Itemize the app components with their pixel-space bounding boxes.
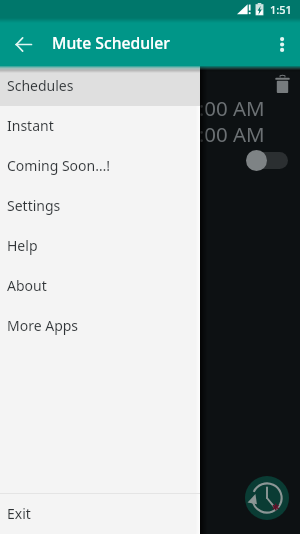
button[interactable]: Add schedule [245,476,289,520]
staticText: Exit [7,504,31,523]
staticText: Instant [7,116,54,135]
button[interactable]: Back [0,21,47,68]
button[interactable]: Delete [275,75,290,93]
staticText: More Apps [7,316,79,335]
staticText: Settings [7,196,61,215]
button[interactable]: About [0,266,200,306]
staticText: 2:00 AM [187,120,265,148]
staticText: 2:00 AM [187,94,265,122]
button[interactable]: Exit [0,494,200,534]
staticText: Schedules [7,76,74,95]
button[interactable]: Toggle schedule [246,150,288,171]
button[interactable]: Coming Soon…! [0,146,200,186]
button[interactable]: More Apps [0,306,200,346]
staticText: Help [7,236,38,255]
staticText: Coming Soon…! [7,156,111,175]
button[interactable]: Schedules [0,66,200,106]
staticText: About [7,276,47,295]
button[interactable]: More options [264,27,298,61]
button[interactable]: Instant [0,106,200,146]
staticText: Mute Scheduler [52,32,170,53]
staticText: 1:51 [270,2,292,17]
button[interactable]: Settings [0,186,200,226]
button[interactable]: Help [0,226,200,266]
